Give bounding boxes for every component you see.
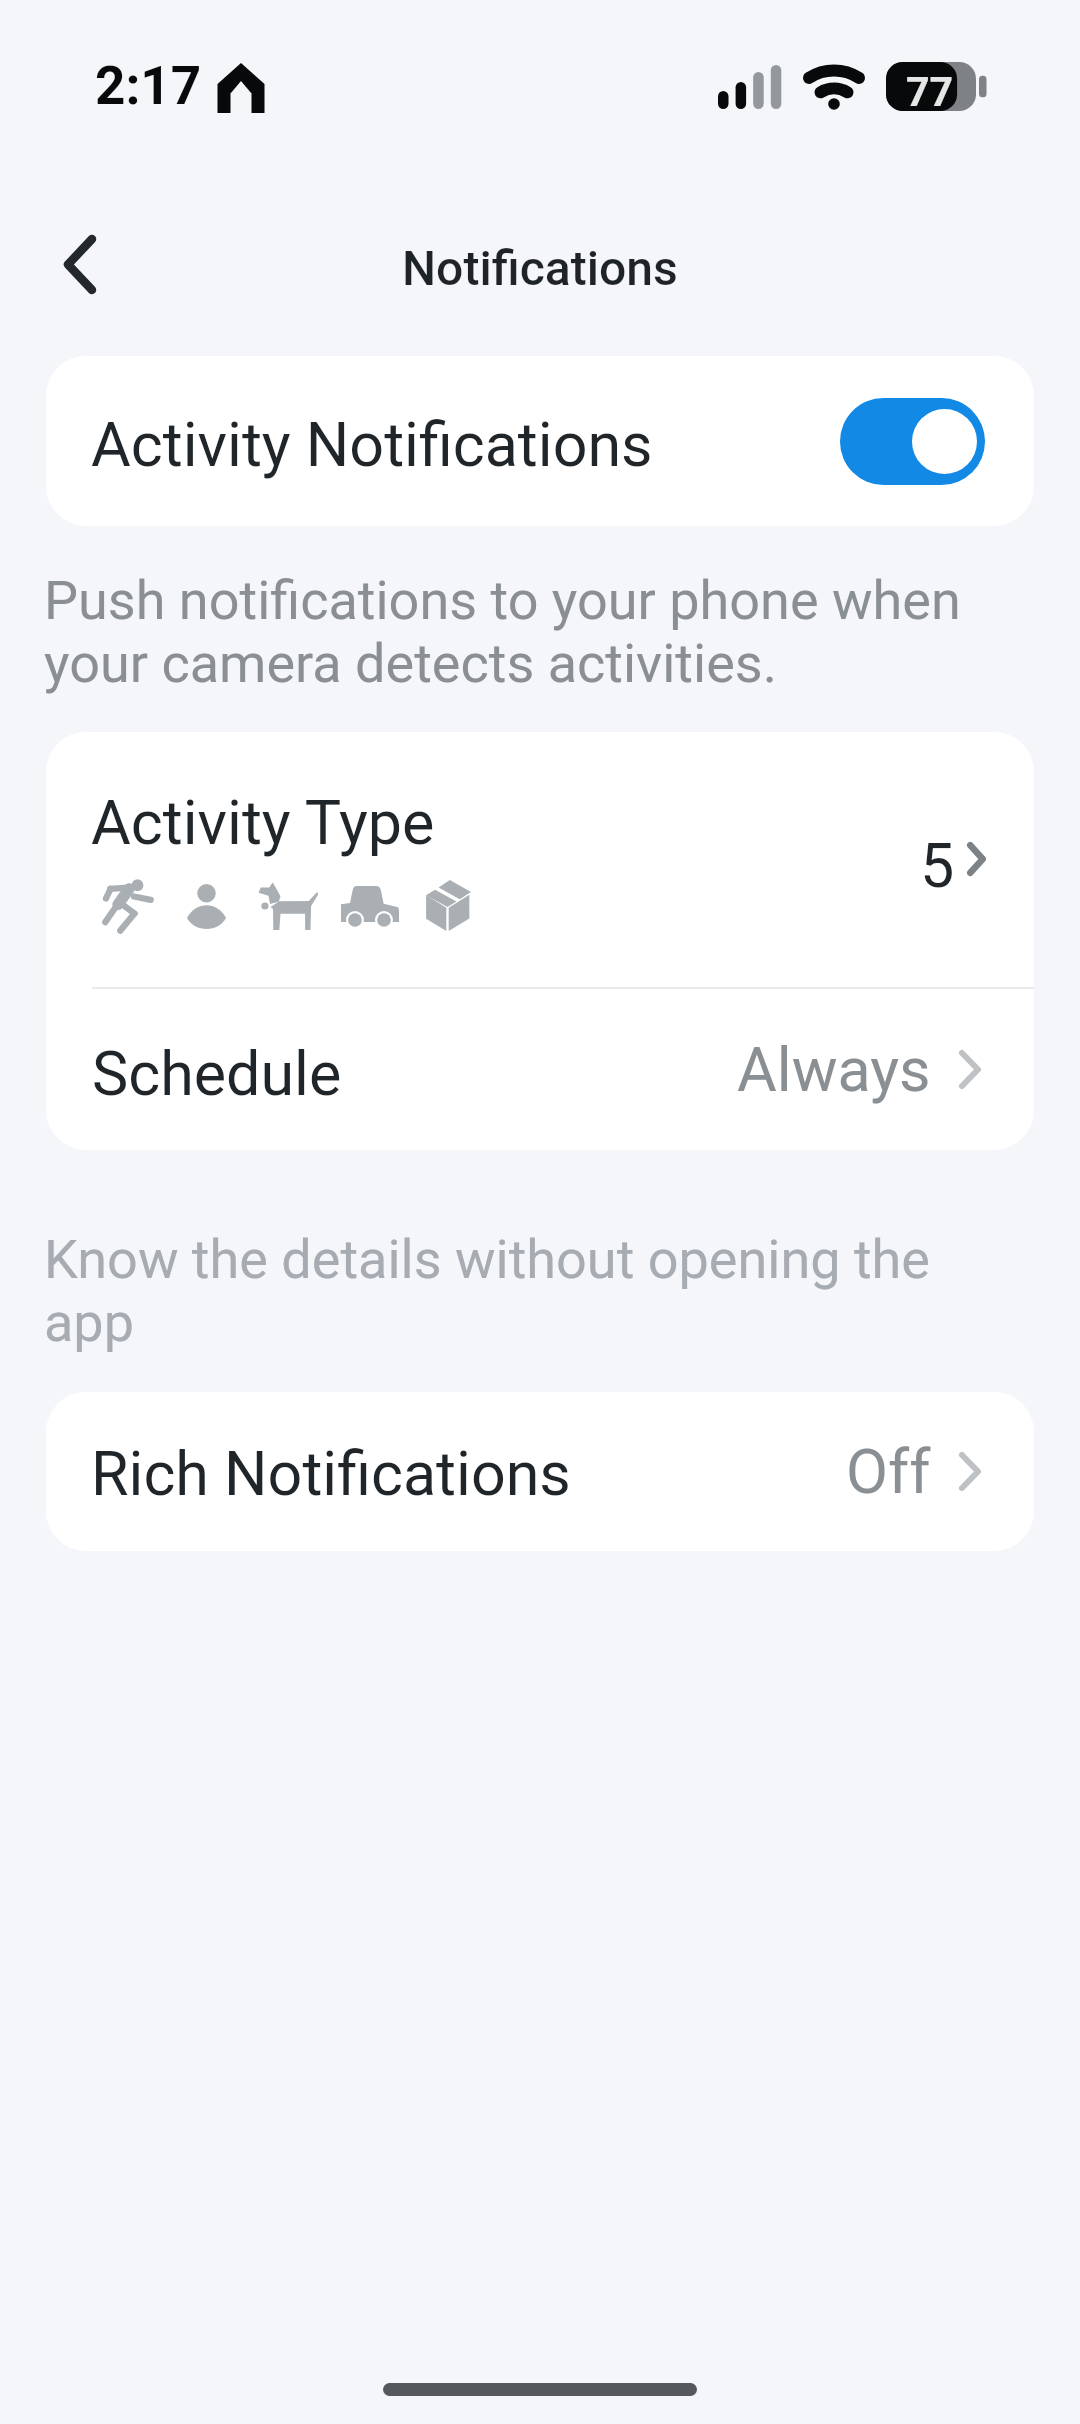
staticText: Rich Notifications [91, 1438, 571, 1509]
button[interactable]: Activity Notifications [46, 356, 1034, 526]
staticText: Push notifications to your phone when yo… [44, 569, 989, 695]
staticText: Activity Notifications [91, 409, 653, 480]
staticText: Activity Type [91, 787, 435, 858]
button[interactable]: Back [42, 220, 118, 308]
staticText: 2:17 [95, 55, 202, 117]
staticText: Know the details without opening the app [44, 1228, 962, 1354]
button[interactable]: Activity Type [46, 732, 1034, 987]
button[interactable]: Activity Notifications toggle [840, 398, 985, 485]
button[interactable]: Schedule [46, 989, 1034, 1150]
staticText: Always [737, 1034, 931, 1105]
button[interactable]: Rich Notifications [46, 1392, 1034, 1551]
staticText: Schedule [92, 1038, 342, 1109]
staticText: 5 [920, 830, 955, 901]
staticText: Off [846, 1436, 931, 1507]
staticText: 77 [906, 68, 954, 116]
staticText: Notifications [402, 240, 678, 296]
